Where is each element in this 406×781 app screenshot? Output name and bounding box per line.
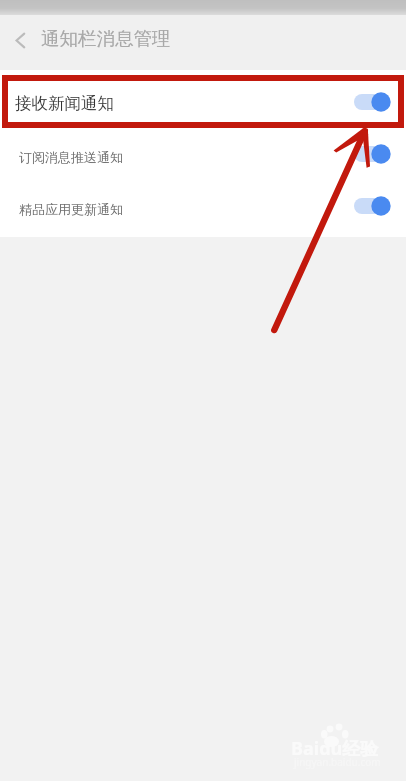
- staticText: 接收新闻通知: [15, 93, 114, 114]
- button[interactable]: 精品应用更新通知: [0, 180, 406, 232]
- staticText: 精品应用更新通知: [19, 201, 123, 217]
- button[interactable]: Back: [3, 20, 37, 60]
- button[interactable]: 订阅消息推送通知: [0, 128, 406, 180]
- button[interactable]: 接收新闻通知: [0, 75, 406, 128]
- button[interactable]: Toggle notification: [354, 90, 391, 114]
- staticText: 订阅消息推送通知: [19, 149, 123, 165]
- staticText: Baidu经验: [291, 736, 379, 761]
- button[interactable]: Toggle notification: [354, 142, 391, 166]
- staticText: 通知栏消息管理: [41, 27, 171, 50]
- button[interactable]: Toggle notification: [354, 194, 391, 218]
